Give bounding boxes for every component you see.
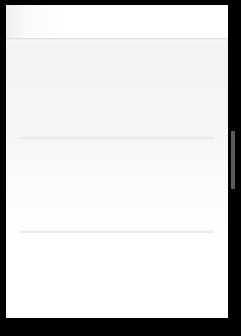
button[interactable] (6, 5, 228, 38)
